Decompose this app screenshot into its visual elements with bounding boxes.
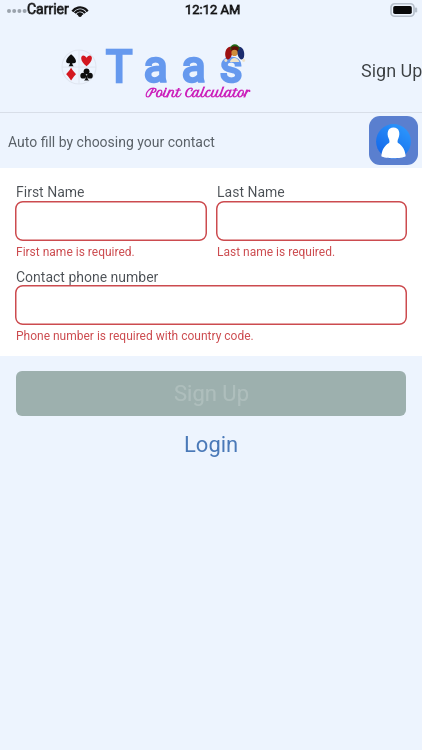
staticText: Contact phone number [16,269,159,285]
staticText: 12:12 AM [185,2,241,17]
button[interactable]: Auto fill by choosing your contact [0,113,422,168]
staticText: Taas [106,41,257,93]
staticText: First Name [16,184,85,200]
button[interactable] [15,201,207,241]
staticText: Carrier [27,1,69,17]
staticText: Carrier [27,1,69,17]
button[interactable] [15,285,407,325]
staticText: Last name is required. [217,245,336,259]
staticText: Point Calculator [146,85,251,100]
staticText: Login [184,432,239,458]
staticText: Auto fill by choosing your contact [8,134,215,150]
staticText: 12:12 AM [185,2,241,17]
staticText: Sign Up [361,60,422,81]
button[interactable]: Sign Up [352,54,422,86]
staticText: Sign Up [174,381,249,407]
staticText: Taas [106,41,257,93]
button[interactable]: Login [170,429,253,461]
staticText: Point Calculator [146,85,251,100]
staticText: Last Name [217,184,285,200]
button[interactable]: Sign Up [16,371,406,416]
button[interactable]: Choose contact [369,116,418,165]
button[interactable] [216,201,407,241]
staticText: First name is required. [16,245,135,259]
staticText: Phone number is required with country co… [16,329,254,343]
